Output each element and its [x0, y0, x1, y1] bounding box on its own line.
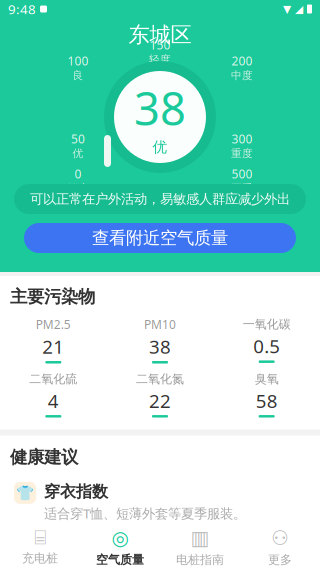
staticText: 重度: [231, 147, 253, 160]
staticText: 健康建议: [10, 446, 78, 468]
staticText: 100: [67, 53, 88, 69]
staticText: 200: [231, 53, 252, 69]
staticText: ◢: [295, 3, 303, 15]
staticText: ▥: [190, 527, 209, 549]
staticText: 查看附近空气质量: [92, 227, 228, 249]
staticText: 天气热，到中午的时候您将会感到有点热，因此建议在午后较热时开启制冷空调。: [44, 557, 265, 568]
staticText: 更多: [268, 552, 292, 567]
staticText: 9:48: [8, 0, 36, 18]
staticText: 良: [72, 69, 83, 82]
staticText: 38: [134, 78, 186, 138]
staticText: 适合穿T恤、短薄外套等夏季服装。: [44, 504, 246, 522]
staticText: 0.5: [253, 334, 280, 358]
staticText: ⌸: [34, 528, 46, 548]
staticText: 可以正常在户外活动，易敏感人群应减少外出: [30, 191, 290, 207]
staticText: 优: [152, 138, 167, 156]
staticText: 臭氧: [255, 371, 279, 386]
staticText: 500: [231, 166, 252, 182]
staticText: 150: [149, 37, 170, 53]
staticText: 一氧化碳: [243, 317, 291, 332]
staticText: 穿衣指数: [44, 482, 108, 501]
staticText: ⚇: [271, 527, 289, 549]
staticText: 4: [48, 388, 59, 413]
button[interactable]: ❄: [0, 528, 320, 568]
staticText: 电桩指南: [176, 552, 224, 567]
staticText: 二氧化硫: [29, 371, 77, 386]
button[interactable]: 查看附近空气质量: [24, 223, 296, 253]
staticText: 22: [149, 388, 171, 413]
staticText: 健康: [67, 182, 89, 195]
staticText: ▼: [283, 3, 291, 15]
button[interactable]: ▥: [160, 526, 240, 568]
staticText: 58: [256, 388, 278, 413]
staticText: 空调指数: [44, 534, 108, 554]
button[interactable]: 👕: [0, 476, 320, 528]
staticText: 优: [72, 147, 83, 160]
staticText: PM10: [144, 316, 176, 332]
staticText: 东城区: [128, 22, 191, 48]
staticText: 👕: [16, 484, 34, 501]
staticText: 二氧化氮: [136, 371, 184, 386]
staticText: 充电桩: [22, 551, 58, 566]
staticText: ❄: [19, 537, 31, 553]
staticText: 严重: [231, 182, 253, 195]
staticText: 50: [71, 131, 85, 147]
button[interactable]: ◎: [80, 526, 160, 568]
staticText: 中度: [231, 69, 253, 82]
staticText: 空气质量: [96, 552, 144, 567]
button[interactable]: ⌸: [0, 526, 80, 568]
staticText: 300: [231, 131, 252, 147]
staticText: 主要污染物: [10, 286, 95, 307]
staticText: PM2.5: [36, 316, 71, 332]
staticText: 0: [74, 166, 81, 182]
staticText: 轻度: [149, 53, 171, 66]
staticText: ◎: [111, 527, 128, 549]
staticText: 21: [42, 334, 64, 359]
staticText: 38: [149, 334, 171, 359]
button[interactable]: ⚇: [240, 526, 320, 568]
